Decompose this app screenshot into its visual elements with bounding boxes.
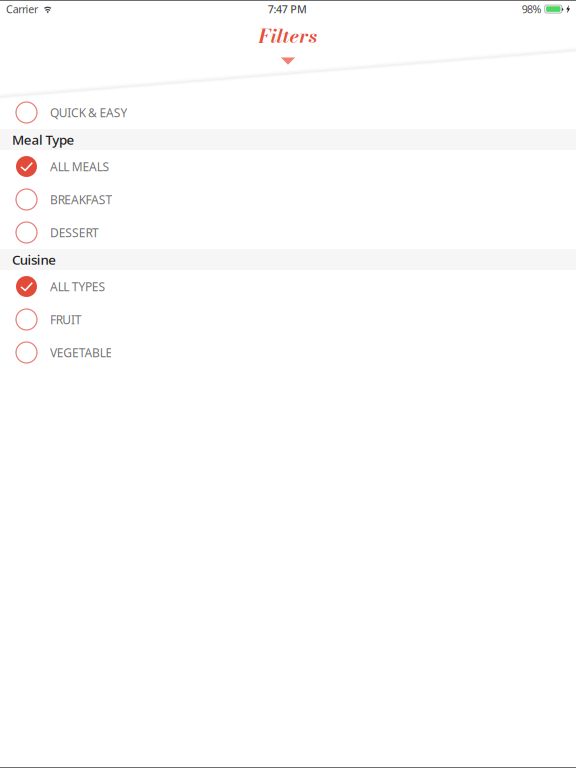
staticText: 7:47 PM	[268, 2, 307, 16]
staticText: QUICK & EASY	[50, 104, 127, 120]
staticText: Carrier	[6, 2, 38, 16]
button[interactable]: DESSERT	[0, 216, 576, 249]
staticText: Filters	[258, 21, 317, 50]
button[interactable]: ALL MEALS	[0, 150, 576, 183]
button[interactable]: VEGETABLE	[0, 336, 576, 369]
staticText: Cuisine	[12, 251, 56, 268]
button[interactable]: BREAKFAST	[0, 183, 576, 216]
staticText: 98%	[522, 2, 541, 16]
button[interactable]: FRUIT	[0, 303, 576, 336]
staticText: VEGETABLE	[50, 344, 112, 360]
staticText: FRUIT	[50, 311, 82, 327]
button[interactable]: ALL TYPES	[0, 270, 576, 303]
staticText: BREAKFAST	[50, 191, 112, 207]
button[interactable]: QUICK & EASY	[0, 96, 576, 129]
staticText: Meal Type	[12, 131, 75, 148]
staticText: ALL TYPES	[50, 278, 105, 294]
staticText: DESSERT	[50, 224, 99, 240]
staticText: ALL MEALS	[50, 158, 109, 174]
